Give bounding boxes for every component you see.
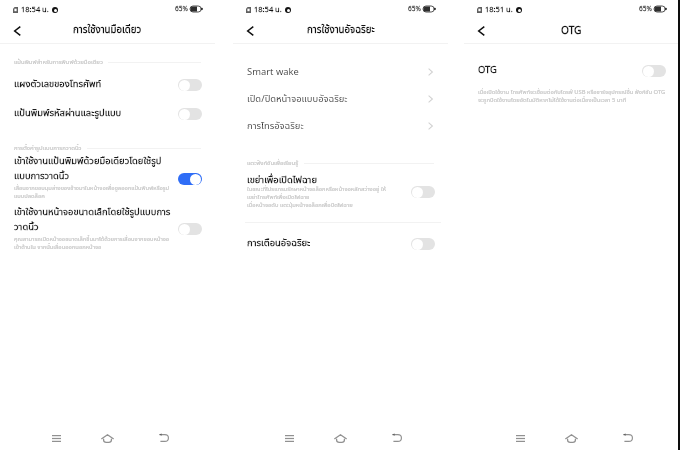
button[interactable]: Switch off xyxy=(411,238,435,250)
button[interactable]: การเตือนอัจฉริยะ xyxy=(233,233,448,254)
staticText: เลื่อนจากขอบมุมล่างของข้างมาในหน้าจอเพื่… xyxy=(14,184,172,200)
button[interactable]: Switch off xyxy=(642,65,666,77)
staticText: 65% xyxy=(408,4,421,14)
staticText: เมื่อเปิดใช้งาน โทรศัพท์จะเชื่อมต่อกับได… xyxy=(478,88,670,104)
button[interactable]: Switch off xyxy=(178,223,202,235)
staticText: OTG xyxy=(561,23,582,38)
button[interactable]: Switch off xyxy=(178,79,202,91)
button[interactable]: Switch off xyxy=(411,186,435,198)
staticText: Smart wake xyxy=(247,65,428,79)
staticText: 18:54 น. xyxy=(21,4,49,15)
button[interactable]: Back xyxy=(380,428,413,448)
staticText: แผงตัวเลขของโทรศัพท์ xyxy=(14,77,102,92)
button[interactable]: Home xyxy=(555,428,588,448)
button[interactable]: Recent apps xyxy=(273,428,306,448)
staticText: การใช้งานมือเดียว xyxy=(73,23,142,38)
staticText: การตั้งค่ารูปแบบการกวาดนิ้ว xyxy=(14,144,82,153)
button[interactable]: Switch off xyxy=(178,108,202,120)
button[interactable]: Switch on xyxy=(178,173,202,185)
button[interactable]: เขย่าเพื่อเปิดไฟฉาย xyxy=(233,173,448,223)
staticText: เข้าใช้งานแป้นพิมพ์ด้วยมือเดียวโดยใช้รูป… xyxy=(14,154,177,184)
button[interactable]: Back xyxy=(147,428,180,448)
staticText: 65% xyxy=(639,4,652,14)
button[interactable]: Back xyxy=(611,428,644,448)
staticText: แป้นพิมพ์รหัสผ่านและรูปแบบ xyxy=(14,106,122,121)
staticText: OTG xyxy=(478,63,497,78)
button[interactable]: Back xyxy=(471,21,491,41)
button[interactable]: แป้นพิมพ์รหัสผ่านและรูปแบบ xyxy=(0,103,215,124)
staticText: 18:54 น. xyxy=(254,4,282,15)
button[interactable]: แผงตัวเลขของโทรศัพท์ xyxy=(0,74,215,95)
button[interactable]: Smart wake xyxy=(233,58,448,85)
button[interactable]: Home xyxy=(324,428,357,448)
staticText: ในขณะที่โปรแกรมรักษาหน้าจอล็อกหรือหน้าจอ… xyxy=(247,185,407,209)
button[interactable]: Back xyxy=(240,21,260,41)
button[interactable]: Back xyxy=(7,21,27,41)
button[interactable]: Home xyxy=(91,428,124,448)
staticText: เปิด/ปิดหน้าจอแบบอัจฉริยะ xyxy=(247,92,428,106)
staticText: 18:51 น. xyxy=(485,4,513,15)
staticText: แป้นพิมพ์สำหรับการพิมพ์ด้วยมือเดียว xyxy=(14,58,103,67)
staticText: คุณสามารถเปิดหน้าจอขนาดเล็กขึ้นมาได้ด้วย… xyxy=(14,235,174,251)
staticText: 65% xyxy=(175,4,188,14)
button[interactable]: เปิด/ปิดหน้าจอแบบอัจฉริยะ xyxy=(233,85,448,112)
staticText: แตะฟังก์ชันเพื่อเรียนรู้ xyxy=(247,159,299,168)
staticText: การใช้งานอัจฉริยะ xyxy=(307,23,375,38)
button[interactable]: เข้าใช้งานแป้นพิมพ์ด้วยมือเดียวโดยใช้รูป… xyxy=(0,153,215,203)
button[interactable]: Recent apps xyxy=(504,428,537,448)
button[interactable]: การโทรอัจฉริยะ xyxy=(233,112,448,139)
staticText: การโทรอัจฉริยะ xyxy=(247,119,428,133)
staticText: การเตือนอัจฉริยะ xyxy=(247,236,311,251)
button[interactable]: OTG xyxy=(464,60,679,81)
staticText: เขย่าเพื่อเปิดไฟฉาย xyxy=(247,173,415,188)
button[interactable]: Recent apps xyxy=(40,428,73,448)
staticText: เข้าใช้งานหน้าจอขนาดเล็กโดยใช้รูปแบบการว… xyxy=(14,205,182,235)
button[interactable]: เข้าใช้งานหน้าจอขนาดเล็กโดยใช้รูปแบบการว… xyxy=(0,204,215,254)
